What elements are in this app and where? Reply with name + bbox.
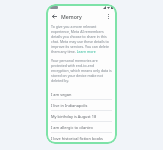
staticText: I am vegan bbox=[51, 92, 72, 97]
staticText: I live in Indianapolis bbox=[51, 103, 88, 108]
button[interactable]: I love historical fiction books bbox=[51, 133, 112, 143]
staticText: My birthday is August 18 bbox=[51, 114, 97, 119]
button[interactable]: Back bbox=[50, 12, 59, 21]
staticText: I am allergic to cilantro bbox=[51, 125, 93, 130]
staticText: Memory bbox=[61, 13, 82, 20]
staticText: I love historical fiction books bbox=[51, 136, 103, 141]
staticText: Your personal memories are protected wit… bbox=[51, 58, 112, 83]
button[interactable]: I am allergic to cilantro bbox=[51, 122, 112, 132]
button[interactable]: I am vegan bbox=[51, 89, 112, 99]
button[interactable]: My birthday is August 18 bbox=[51, 111, 112, 121]
staticText: To give you a more relevant experience, … bbox=[51, 24, 112, 54]
button[interactable]: I live in Indianapolis bbox=[51, 100, 112, 110]
button[interactable]: More options bbox=[104, 12, 113, 21]
